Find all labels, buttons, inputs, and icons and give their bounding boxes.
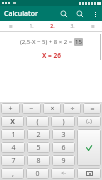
staticText: X = 26 <box>42 51 61 60</box>
button[interactable]: 8 <box>27 155 50 166</box>
button[interactable]: <- <box>51 168 75 179</box>
button[interactable]: 2. <box>42 21 62 31</box>
staticText: 5 <box>36 143 41 153</box>
button[interactable]: ( <box>26 116 49 127</box>
staticText: X <box>10 117 15 127</box>
staticText: ≡ <box>90 23 95 29</box>
button[interactable]: 1 <box>1 129 25 140</box>
button[interactable]: ≡ <box>82 21 102 31</box>
staticText: 2 <box>36 130 41 140</box>
staticText: × <box>50 104 55 114</box>
staticText: ( <box>36 117 39 127</box>
button[interactable]: 6 <box>52 142 75 153</box>
staticText: , <box>12 169 14 179</box>
button[interactable]: 5 <box>27 142 50 153</box>
button[interactable]: × <box>43 103 61 114</box>
button[interactable]: 3. <box>62 21 82 31</box>
staticText: 3. <box>70 23 75 30</box>
staticText: = <box>90 104 95 114</box>
staticText: ÷ <box>70 104 75 114</box>
button[interactable]: Confirm <box>77 129 101 166</box>
staticText: 3 <box>61 130 66 140</box>
staticText: (,.) <box>86 118 92 125</box>
button[interactable]: More options <box>90 9 100 19</box>
button[interactable]: 4 <box>1 142 25 153</box>
staticText: 6 <box>61 143 66 153</box>
button[interactable]: ≡ <box>0 21 21 31</box>
button[interactable]: Find <box>74 8 86 20</box>
button[interactable]: 9 <box>52 155 75 166</box>
staticText: 1 <box>11 130 16 140</box>
staticText: ≡ <box>8 23 13 29</box>
staticText: 7 <box>11 156 16 166</box>
staticText: 4 <box>11 143 16 153</box>
button[interactable]: Delete <box>77 168 101 179</box>
staticText: 15 <box>75 38 82 46</box>
button[interactable]: 0 <box>26 168 49 179</box>
button[interactable]: 7 <box>1 155 25 166</box>
staticText: + <box>8 104 13 114</box>
button[interactable]: 1. <box>21 21 42 31</box>
button[interactable]: (,.) <box>77 116 101 127</box>
button[interactable]: 2 <box>27 129 50 140</box>
button[interactable]: , <box>1 168 24 179</box>
button[interactable]: = <box>83 103 101 114</box>
button[interactable]: 3 <box>52 129 75 140</box>
button[interactable]: + <box>1 103 20 114</box>
staticText: ) <box>62 117 65 127</box>
button[interactable]: X <box>1 116 24 127</box>
staticText: 1. <box>29 23 34 30</box>
button[interactable]: Search <box>58 8 70 20</box>
staticText: 9 <box>61 156 66 166</box>
button[interactable]: ÷ <box>63 103 81 114</box>
staticText: 0 <box>35 169 40 179</box>
staticText: − <box>29 104 34 114</box>
staticText: <- <box>61 170 66 177</box>
staticText: 8 <box>36 156 41 166</box>
staticText: (2,5·X − 5) + 8 × 2 = <box>20 38 74 46</box>
button[interactable]: ) <box>51 116 75 127</box>
button[interactable]: − <box>22 103 41 114</box>
staticText: 2. <box>50 23 55 30</box>
staticText: Calculator <box>4 9 38 19</box>
